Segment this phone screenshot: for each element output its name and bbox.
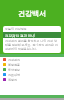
- button[interactable]: 진료내역: [3, 72, 61, 77]
- staticText: 오늘의 건강정보: [5, 27, 27, 31]
- staticText: 건강검진 결과를 확인하고 나의 건강 상태를 점검해 보세요. 정기적인 검진…: [5, 39, 59, 51]
- staticText: 예방접종: [8, 63, 20, 67]
- button[interactable]: 처방전: [3, 77, 61, 82]
- staticText: 건강백서: [18, 9, 46, 18]
- button[interactable]: 건강검진: [3, 57, 61, 62]
- staticText: 진료내역: [8, 73, 20, 77]
- staticText: 건강검진 결과 안내: [5, 33, 35, 38]
- button[interactable]: 예방접종: [3, 62, 61, 67]
- button[interactable]: 투약정보: [3, 67, 61, 72]
- staticText: 건강검진: [8, 58, 20, 62]
- staticText: 처방전: [8, 78, 17, 82]
- staticText: 투약정보: [8, 68, 20, 72]
